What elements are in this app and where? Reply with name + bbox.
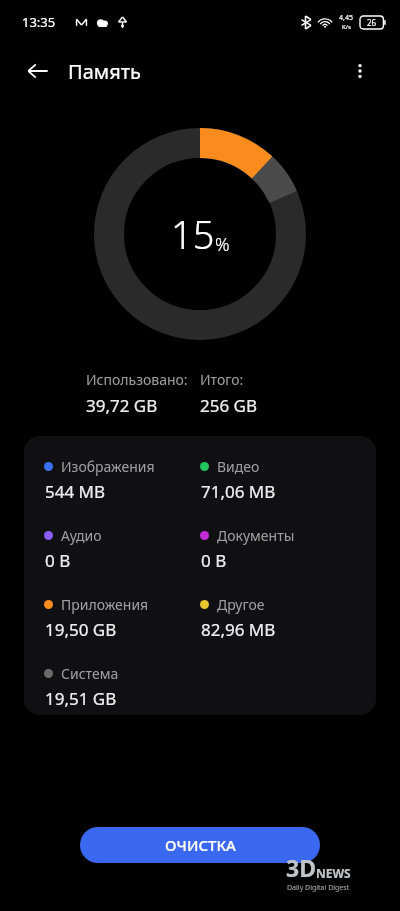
button[interactable]: ОЧИСТКА bbox=[80, 827, 320, 863]
button[interactable]: Back bbox=[18, 51, 58, 91]
staticText: NEWS bbox=[316, 865, 351, 881]
button[interactable]: Изображения bbox=[44, 457, 200, 503]
staticText: 39,72 GB bbox=[86, 394, 158, 417]
staticText: Изображения bbox=[61, 457, 155, 476]
staticText: 544 MB bbox=[45, 480, 106, 503]
button[interactable]: Видео bbox=[200, 457, 376, 503]
staticText: Документы bbox=[217, 526, 295, 545]
staticText: 82,96 MB bbox=[201, 618, 276, 641]
staticText: 3D bbox=[286, 852, 316, 883]
button[interactable]: More options bbox=[342, 53, 378, 89]
staticText: Видео bbox=[217, 457, 260, 476]
button[interactable]: Система bbox=[44, 664, 200, 710]
staticText: Использовано: bbox=[86, 370, 188, 389]
button[interactable]: Аудио bbox=[44, 526, 200, 572]
staticText: Аудио bbox=[61, 526, 102, 545]
button[interactable]: Документы bbox=[200, 526, 376, 572]
staticText: Daily Digital Digest bbox=[287, 883, 350, 893]
staticText: ОЧИСТКА bbox=[165, 835, 236, 855]
staticText: Память bbox=[68, 58, 141, 85]
staticText: Итого: bbox=[200, 370, 244, 389]
staticText: 0 B bbox=[45, 549, 71, 572]
staticText: 4,45 bbox=[339, 13, 353, 23]
staticText: Приложения bbox=[61, 595, 149, 614]
staticText: 19,50 GB bbox=[45, 618, 117, 641]
staticText: 0 B bbox=[201, 549, 227, 572]
staticText: 19,51 GB bbox=[45, 687, 117, 710]
staticText: K/s bbox=[342, 23, 351, 31]
button[interactable]: Другое bbox=[200, 595, 376, 641]
staticText: 15 bbox=[171, 208, 215, 260]
staticText: 13:35 bbox=[22, 13, 56, 31]
staticText: Другое bbox=[217, 595, 265, 614]
staticText: 26 bbox=[367, 17, 377, 28]
staticText: 256 GB bbox=[200, 394, 258, 417]
staticText: Система bbox=[61, 664, 119, 683]
button[interactable]: Приложения bbox=[44, 595, 200, 641]
staticText: % bbox=[215, 232, 230, 257]
staticText: 71,06 MB bbox=[201, 480, 276, 503]
